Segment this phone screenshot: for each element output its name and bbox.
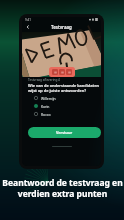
staticText: Willemijn (41, 96, 56, 101)
button[interactable]: Pause (59, 69, 65, 75)
staticText: 9:41 (25, 18, 31, 22)
staticText: Testvraag (51, 24, 72, 30)
button[interactable]: Forward 10 seconds (66, 69, 72, 75)
button[interactable]: Rewind 10 seconds (52, 69, 58, 75)
button[interactable]: Rocco (22, 110, 101, 118)
button[interactable]: Back (22, 22, 33, 32)
staticText: Verstuur (56, 130, 73, 135)
button[interactable]: Karin (22, 102, 101, 110)
staticText: Testvraag aflevering 4 (28, 78, 60, 82)
staticText: Karin (41, 104, 50, 109)
button[interactable]: Willemijn (22, 94, 101, 102)
staticText: Beantwoord de testvraag en verdien extra… (2, 177, 123, 199)
staticText: Wie van de onderstaande kandidaten wijst… (28, 83, 99, 93)
button[interactable]: Verstuur (28, 127, 101, 138)
staticText: Rocco (41, 112, 51, 117)
